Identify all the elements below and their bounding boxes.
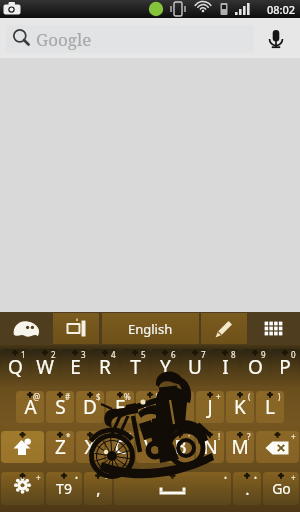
staticText: B	[174, 434, 187, 460]
staticText: !	[218, 431, 221, 442]
staticText: M	[231, 434, 249, 460]
staticText: V	[144, 434, 156, 460]
staticText: D	[83, 394, 97, 420]
staticText: .	[245, 478, 250, 500]
staticText: •	[254, 472, 258, 483]
button[interactable]: T9	[46, 472, 82, 505]
button[interactable]: D	[76, 391, 104, 423]
staticText: 08:02	[267, 2, 296, 17]
staticText: Google	[36, 28, 92, 51]
staticText: P	[279, 354, 291, 380]
staticText: •	[105, 472, 109, 483]
button[interactable]: O	[241, 349, 269, 384]
staticText: +	[291, 472, 296, 483]
staticText: 4	[111, 349, 116, 360]
button[interactable]: L	[256, 391, 284, 423]
button[interactable]: ,	[84, 472, 112, 505]
staticText: U	[188, 354, 202, 380]
staticText: 2	[51, 349, 56, 360]
button[interactable]: M	[226, 431, 254, 463]
staticText: Z	[55, 434, 66, 460]
staticText: 5	[141, 349, 146, 360]
staticText: )	[278, 391, 281, 402]
staticText: J	[207, 394, 213, 420]
button[interactable]: Symbols	[1, 472, 44, 505]
staticText: G	[143, 394, 157, 420]
staticText: +	[216, 391, 221, 402]
staticText: '	[129, 431, 131, 442]
button[interactable]: B	[166, 431, 194, 463]
button[interactable]: R	[91, 349, 119, 384]
staticText: I	[222, 354, 229, 380]
staticText: 6	[171, 349, 176, 360]
staticText: L	[265, 394, 275, 420]
staticText: •	[75, 472, 79, 483]
button[interactable]: T	[121, 349, 149, 384]
staticText: 9	[261, 349, 266, 360]
staticText: $	[96, 391, 101, 402]
button[interactable]: Y	[151, 349, 179, 384]
button[interactable]: Space	[114, 472, 231, 505]
staticText: C	[114, 434, 127, 460]
staticText: 7	[201, 349, 206, 360]
staticText: S	[55, 394, 66, 420]
staticText: Q	[8, 354, 23, 380]
button[interactable]: A	[16, 391, 44, 423]
staticText: K	[234, 394, 246, 420]
button[interactable]: Q	[1, 349, 29, 384]
button[interactable]: F	[106, 391, 134, 423]
button[interactable]: E	[61, 349, 89, 384]
staticText: +	[36, 472, 41, 483]
button[interactable]: Voice search	[254, 25, 298, 53]
staticText: •	[224, 472, 228, 483]
staticText: T9	[56, 479, 72, 498]
staticText: *	[66, 431, 71, 442]
staticText: #	[65, 391, 71, 402]
button[interactable]: S	[46, 391, 74, 423]
button[interactable]: English	[102, 313, 199, 344]
staticText: F	[115, 394, 125, 420]
staticText: Y	[160, 354, 171, 380]
staticText: ;	[188, 431, 191, 442]
staticText: T	[130, 354, 141, 380]
button[interactable]: Z	[46, 431, 74, 463]
staticText: 0	[291, 349, 296, 360]
staticText: O	[248, 354, 263, 380]
staticText: &	[155, 391, 161, 402]
button[interactable]: .	[233, 472, 261, 505]
staticText: N	[203, 434, 218, 460]
staticText: X	[84, 434, 96, 460]
staticText: (	[248, 391, 251, 402]
button[interactable]: Google	[6, 25, 254, 53]
button[interactable]: J	[196, 391, 224, 423]
button[interactable]: Shift	[1, 431, 44, 463]
button[interactable]: W	[31, 349, 59, 384]
button[interactable]: C	[106, 431, 134, 463]
button[interactable]: Emoji	[0, 312, 53, 345]
staticText: +	[291, 431, 296, 442]
staticText: 8	[231, 349, 236, 360]
button[interactable]: U	[181, 349, 209, 384]
staticText: %	[124, 391, 131, 402]
button[interactable]: Backspace	[256, 431, 299, 463]
staticText: E	[70, 354, 81, 380]
staticText: W	[36, 354, 54, 380]
button[interactable]: Theme	[53, 313, 99, 344]
staticText: English	[128, 320, 173, 338]
button[interactable]: H	[166, 391, 194, 423]
button[interactable]: V	[136, 431, 164, 463]
staticText: 3	[81, 349, 86, 360]
button[interactable]: K	[226, 391, 254, 423]
button[interactable]: Keyboard layout	[247, 312, 300, 345]
button[interactable]: Edit	[201, 313, 247, 344]
button[interactable]: G	[136, 391, 164, 423]
button[interactable]: I	[211, 349, 239, 384]
staticText: H	[173, 394, 188, 420]
button[interactable]: Go	[263, 472, 299, 505]
button[interactable]: N	[196, 431, 224, 463]
button[interactable]: X	[76, 431, 104, 463]
button[interactable]: P	[271, 349, 299, 384]
staticText: -	[188, 391, 191, 402]
staticText: ,	[96, 478, 101, 500]
